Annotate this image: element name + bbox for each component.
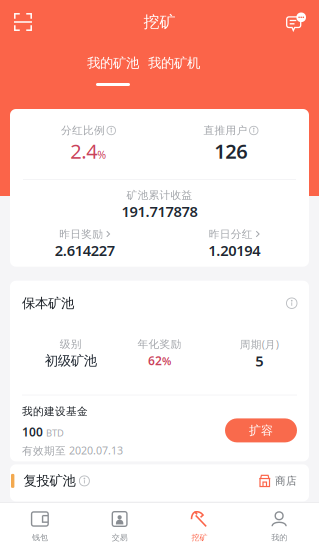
button[interactable]: 扩容 [225,418,297,442]
staticText: 扩容 [249,423,273,438]
button[interactable]: 我的 [239,503,319,550]
staticText: 初级矿池 [45,352,97,369]
button[interactable]: 钱包 [0,503,80,550]
button[interactable]: 交易 [80,503,160,550]
staticText: 有效期至 2020.07.13 [22,443,123,457]
staticText: 191.717878 [121,201,197,221]
staticText: 复投矿池 [23,473,75,489]
staticText: 126 [214,138,247,164]
button[interactable]: Scan [0,7,46,37]
staticText: 1.20194 [208,240,260,260]
staticText: % [97,147,106,162]
staticText: 昨日分红 [209,228,253,241]
button[interactable]: 挖矿 [159,503,239,550]
staticText: 2.614227 [55,240,115,260]
staticText: 保本矿池 [22,295,74,311]
button[interactable]: 商店 [258,474,297,488]
staticText: 5 [255,351,263,370]
staticText: 级别 [60,338,82,351]
staticText: 周期(月) [240,337,279,351]
staticText: 100 [22,424,43,440]
staticText: 我的建设基金 [22,405,88,418]
staticText: 我的矿池 [87,55,139,71]
staticText: 钱包 [32,533,48,542]
staticText: 2.4 [70,138,97,164]
staticText: 年化奖励 [137,338,181,351]
button[interactable]: 我的矿池 [87,55,139,86]
staticText: 直推用户 [203,124,247,137]
button[interactable]: Info [286,298,297,308]
staticText: BTD [46,427,64,439]
staticText: 商店 [275,474,297,487]
staticText: % [162,354,171,368]
staticText: 挖矿 [191,533,207,542]
button[interactable]: Messages [273,7,319,37]
staticText: 分红比例 [61,124,105,137]
staticText: 我的矿机 [148,55,200,71]
staticText: 昨日奖励 [59,228,103,241]
staticText: 矿池累计收益 [126,189,192,202]
staticText: 我的 [271,533,287,542]
staticText: 交易 [112,533,128,542]
staticText: 挖矿 [143,12,175,32]
button[interactable]: 我的矿机 [148,55,200,86]
staticText: 62 [148,353,162,369]
